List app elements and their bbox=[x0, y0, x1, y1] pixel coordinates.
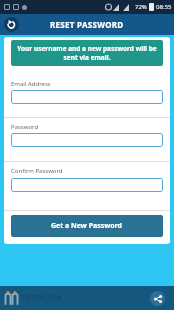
button[interactable] bbox=[4, 17, 19, 32]
button[interactable] bbox=[11, 178, 163, 192]
staticText: Your username and a new password will be… bbox=[17, 44, 157, 62]
staticText: Password bbox=[11, 123, 39, 131]
staticText: RESET PASSWORD bbox=[50, 19, 124, 30]
button[interactable] bbox=[11, 133, 163, 147]
staticText: 08:55 bbox=[156, 3, 172, 11]
button[interactable] bbox=[11, 90, 163, 104]
staticText: Get a New Password bbox=[51, 221, 123, 231]
staticText: 72% bbox=[135, 3, 147, 11]
staticText: Confirm Password bbox=[11, 167, 63, 175]
button[interactable] bbox=[150, 291, 165, 306]
staticText: INTERLINK bbox=[21, 293, 63, 303]
button[interactable]: Get a New Password bbox=[11, 215, 163, 237]
staticText: Email Address bbox=[11, 80, 51, 88]
